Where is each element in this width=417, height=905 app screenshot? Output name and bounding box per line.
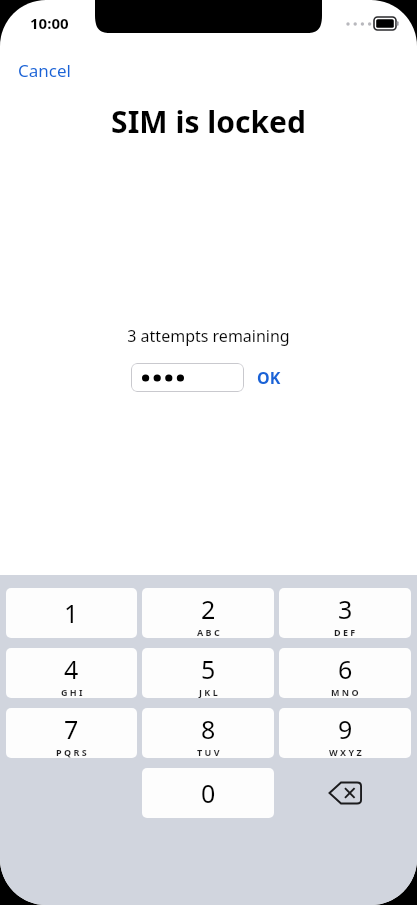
staticText: M N O <box>331 686 359 698</box>
staticText: SIM is locked <box>0 101 417 142</box>
staticText: 1 <box>64 596 79 630</box>
staticText: OK <box>257 367 281 389</box>
staticText: 3 attempts remaining <box>127 325 290 347</box>
staticText: D E F <box>334 626 356 638</box>
button[interactable]: 3 <box>279 588 411 638</box>
staticText: 9 <box>338 712 353 746</box>
button[interactable]: 6 <box>279 648 411 698</box>
staticText: Cancel <box>18 59 71 82</box>
button[interactable]: Delete <box>279 768 411 818</box>
staticText: 3 <box>338 592 353 626</box>
staticText: 8 <box>201 712 216 746</box>
staticText: 7 <box>64 712 79 746</box>
button[interactable]: 4 <box>6 648 137 698</box>
staticText: W X Y Z <box>329 746 362 758</box>
staticText: 2 <box>201 592 216 626</box>
button[interactable]: 7 <box>6 708 137 758</box>
button[interactable]: OK <box>252 364 286 392</box>
button[interactable]: 5 <box>142 648 274 698</box>
staticText: 6 <box>338 652 353 686</box>
staticText: 10:00 <box>30 13 69 33</box>
staticText: J K L <box>199 686 218 698</box>
staticText: 0 <box>201 776 216 810</box>
staticText: P Q R S <box>56 746 87 758</box>
button[interactable]: 0 <box>142 768 274 818</box>
button[interactable]: 8 <box>142 708 274 758</box>
staticText: G H I <box>61 686 83 698</box>
staticText: T U V <box>197 746 220 758</box>
staticText: A B C <box>197 626 220 638</box>
staticText: 5 <box>201 652 216 686</box>
button[interactable]: PIN entry field <box>131 363 244 392</box>
button[interactable]: 1 <box>6 588 137 638</box>
button[interactable]: 2 <box>142 588 274 638</box>
staticText: 4 <box>64 652 79 686</box>
button[interactable]: Cancel <box>12 56 77 85</box>
button[interactable]: 9 <box>279 708 411 758</box>
